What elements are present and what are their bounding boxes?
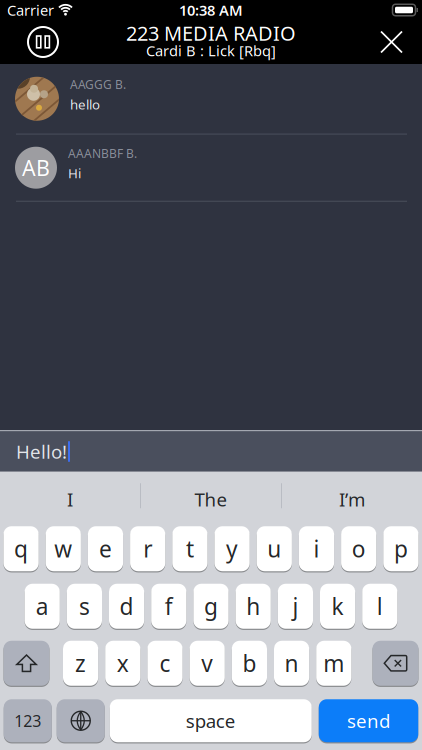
button[interactable]: r	[130, 526, 165, 571]
staticText: y	[226, 534, 238, 564]
staticText: a	[36, 591, 49, 621]
staticText: I	[67, 487, 73, 512]
staticText: u	[267, 534, 281, 564]
button[interactable]: k	[320, 584, 355, 629]
staticText: hello	[70, 95, 100, 113]
button[interactable]: d	[109, 584, 144, 629]
staticText: r	[143, 534, 152, 564]
button[interactable]: space	[110, 699, 312, 742]
button[interactable]: i	[299, 526, 334, 571]
button[interactable]: Numbers	[4, 699, 52, 742]
button[interactable]: n	[274, 641, 309, 686]
staticText: AAANBBF B.	[68, 145, 137, 161]
staticText: x	[117, 648, 129, 678]
staticText: h	[246, 591, 260, 621]
staticText: g	[204, 591, 218, 621]
staticText: c	[159, 648, 170, 678]
staticText: send	[347, 708, 390, 733]
staticText: k	[332, 591, 344, 621]
staticText: Carrier	[7, 0, 54, 20]
staticText: AB	[22, 153, 50, 182]
staticText: Cardi B : Lick [Rbq]	[146, 41, 276, 60]
button[interactable]: h	[236, 584, 271, 629]
button[interactable]: I	[0, 471, 140, 520]
staticText: z	[75, 648, 86, 678]
button[interactable]: t	[172, 526, 207, 571]
button[interactable]: l	[362, 584, 397, 629]
button[interactable]: Shift	[3, 641, 49, 686]
button[interactable]: e	[88, 526, 123, 571]
staticText: 223 MEDIA RADIO	[126, 20, 296, 46]
button[interactable]: z	[63, 641, 98, 686]
staticText: f	[165, 591, 173, 621]
button[interactable]: w	[46, 526, 81, 571]
staticText: p	[394, 534, 408, 564]
button[interactable]: j	[278, 584, 313, 629]
button[interactable]: Next keyboard	[57, 699, 105, 742]
button[interactable]: c	[147, 641, 183, 686]
staticText: AAGGG B.	[70, 76, 126, 92]
staticText: 10:38 AM	[179, 0, 243, 20]
staticText: I’m	[339, 487, 365, 512]
button[interactable]: o	[341, 526, 376, 571]
staticText: q	[14, 534, 28, 564]
staticText: l	[377, 591, 383, 621]
button[interactable]: x	[105, 641, 140, 686]
button[interactable]: I’m	[282, 471, 422, 520]
staticText: b	[242, 648, 256, 678]
button[interactable]: Close	[381, 31, 402, 52]
button[interactable]: s	[67, 584, 102, 629]
button[interactable]: Pause	[28, 27, 58, 57]
button[interactable]: b	[232, 641, 267, 686]
staticText: space	[186, 708, 236, 733]
staticText: w	[54, 534, 72, 564]
staticText: n	[285, 648, 299, 678]
button[interactable]: g	[193, 584, 229, 629]
button[interactable]: The	[141, 471, 281, 520]
staticText: Hello!	[16, 439, 67, 464]
button[interactable]: v	[190, 641, 225, 686]
button[interactable]: Delete	[372, 641, 418, 686]
button[interactable]: p	[383, 526, 418, 571]
staticText: d	[120, 591, 134, 621]
button[interactable]: send	[319, 699, 418, 742]
staticText: o	[352, 534, 366, 564]
button[interactable]: y	[214, 526, 250, 571]
staticText: t	[186, 534, 194, 564]
staticText: j	[292, 591, 298, 621]
staticText: i	[313, 534, 319, 564]
button[interactable]: f	[151, 584, 186, 629]
staticText: m	[323, 648, 344, 678]
button[interactable]: m	[316, 641, 351, 686]
staticText: The	[194, 487, 227, 512]
button[interactable]: u	[257, 526, 292, 571]
button[interactable]: Hello!	[0, 431, 422, 471]
button[interactable]: a	[25, 584, 60, 629]
staticText: Hi	[68, 164, 81, 182]
staticText: 123	[14, 710, 41, 731]
staticText: s	[79, 591, 90, 621]
button[interactable]: q	[3, 526, 39, 571]
staticText: e	[99, 534, 112, 564]
staticText: v	[201, 648, 213, 678]
